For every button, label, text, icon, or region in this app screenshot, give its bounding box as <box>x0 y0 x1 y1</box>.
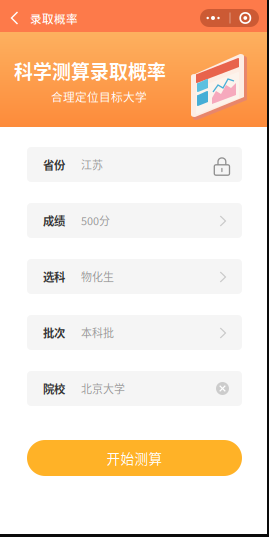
staticText: 院校 <box>43 380 65 397</box>
staticText: 批次 <box>43 324 65 341</box>
staticText: 省份 <box>43 156 65 173</box>
button[interactable]: 成绩 <box>27 203 242 238</box>
staticText: 500分 <box>81 213 110 228</box>
staticText: 物化生 <box>81 269 114 284</box>
button[interactable]: 院校 <box>27 371 242 406</box>
button[interactable]: 批次 <box>27 315 242 350</box>
button[interactable]: 省份 <box>27 147 242 182</box>
staticText: 合理定位目标大学 <box>51 88 147 105</box>
staticText: 选科 <box>43 268 65 285</box>
staticText: 录取概率 <box>30 10 78 27</box>
staticText: 江苏 <box>81 157 103 172</box>
staticText: 北京大学 <box>81 381 125 396</box>
button[interactable]: 选科 <box>27 259 242 294</box>
staticText: 本科批 <box>81 325 114 340</box>
button[interactable]: 开始测算 <box>27 440 242 476</box>
staticText: 科学测算录取概率 <box>14 57 166 84</box>
button[interactable]: Mini program menu <box>200 9 259 27</box>
staticText: 开始测算 <box>106 448 162 468</box>
button[interactable]: Back <box>3 2 26 34</box>
staticText: 成绩 <box>43 212 65 229</box>
